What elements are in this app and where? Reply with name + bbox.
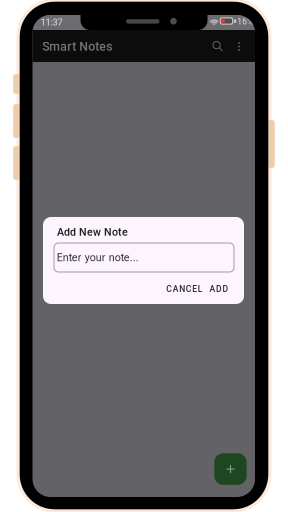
button[interactable]: ADD [206, 280, 232, 298]
staticText: Smart Notes [42, 39, 112, 54]
staticText: CANCEL [166, 284, 203, 294]
button[interactable]: More options [228, 33, 249, 60]
staticText: Enter your note... [57, 251, 139, 264]
button[interactable]: CANCEL [162, 280, 206, 298]
button[interactable]: Add note [214, 453, 247, 485]
staticText: ADD [209, 284, 229, 294]
staticText: 16% [237, 17, 253, 26]
staticText: 11:37 [40, 17, 62, 28]
staticText: Add New Note [57, 226, 128, 238]
button[interactable]: Search [205, 33, 230, 60]
